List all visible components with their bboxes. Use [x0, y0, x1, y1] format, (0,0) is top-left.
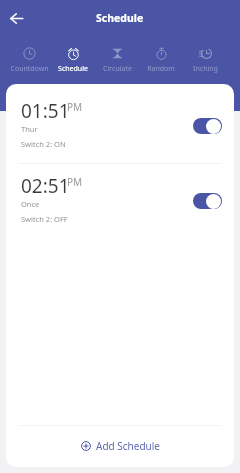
staticText: Circulate [103, 64, 132, 74]
button[interactable]: 01:51 [6, 89, 234, 163]
button[interactable]: Inching [183, 34, 227, 74]
staticText: Schedule [58, 64, 88, 74]
button[interactable]: Back [4, 6, 28, 30]
staticText: Add Schedule [96, 439, 160, 453]
staticText: Random [147, 64, 175, 74]
button[interactable]: Add Schedule [6, 426, 234, 467]
button[interactable]: Countdown [7, 34, 51, 74]
staticText: 01:51 [21, 98, 70, 124]
button[interactable]: 02:51 [6, 164, 234, 238]
staticText: Switch 2: OFF [21, 214, 68, 224]
staticText: 02:51 [21, 173, 70, 199]
button[interactable]: Schedule [51, 34, 95, 74]
staticText: Inching [193, 64, 218, 74]
staticText: PM [67, 100, 83, 114]
button[interactable]: Random [139, 34, 183, 74]
staticText: Once [21, 199, 40, 209]
button[interactable]: Toggle switch [193, 118, 222, 134]
button[interactable]: Circulate [95, 34, 139, 74]
staticText: Schedule [96, 11, 144, 25]
staticText: Countdown [10, 64, 49, 74]
staticText: PM [67, 175, 83, 189]
button[interactable]: Toggle switch [193, 193, 222, 209]
staticText: Thur [21, 124, 38, 134]
staticText: Switch 2: ON [21, 139, 66, 149]
